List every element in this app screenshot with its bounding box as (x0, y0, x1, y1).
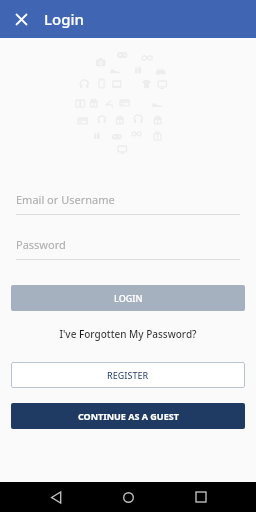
staticText: Login (44, 9, 84, 29)
button[interactable]: Back (39, 482, 73, 512)
button[interactable]: REGISTER (11, 362, 245, 388)
button[interactable]: I've Forgotten My Password? (0, 327, 256, 341)
staticText: I've Forgotten My Password? (59, 327, 197, 341)
button[interactable]: CONTINUE AS A GUEST (11, 403, 245, 429)
staticText: Password (16, 237, 66, 252)
button[interactable]: Recent apps (184, 482, 218, 512)
staticText: Email or Username (16, 192, 115, 207)
button[interactable]: Close (8, 6, 34, 32)
staticText: CONTINUE AS A GUEST (78, 410, 179, 422)
staticText: LOGIN (114, 292, 143, 304)
button[interactable]: LOGIN (11, 285, 245, 311)
button[interactable]: Password (16, 237, 240, 260)
button[interactable]: Home (111, 482, 145, 512)
staticText: REGISTER (107, 369, 149, 381)
button[interactable]: Email or Username (16, 192, 240, 215)
